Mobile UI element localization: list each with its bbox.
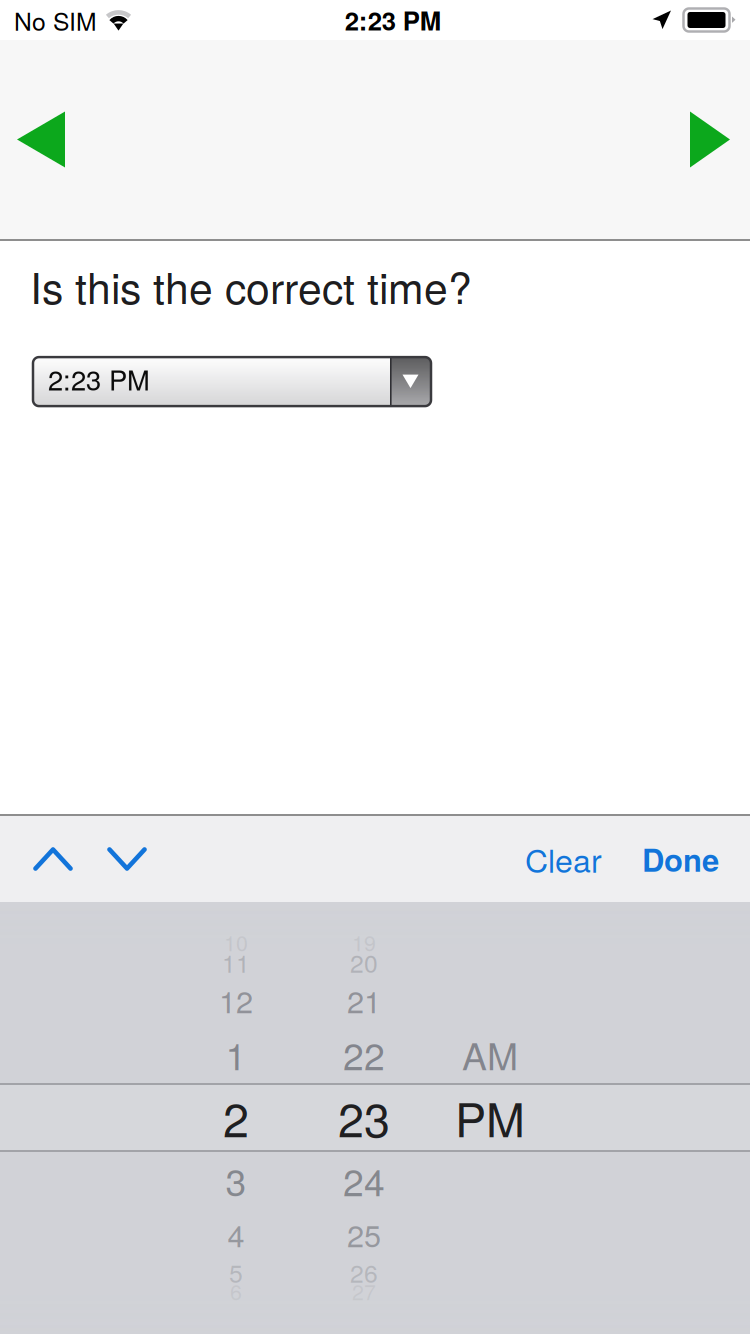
staticText: PM: [455, 1084, 525, 1150]
staticText: Clear: [525, 836, 602, 882]
button[interactable]: Previous field: [0, 816, 107, 902]
staticText: 2:23 PM: [48, 359, 150, 398]
staticText: 19: [352, 927, 376, 957]
staticText: 27: [352, 1276, 376, 1306]
button[interactable]: Clear: [505, 816, 622, 902]
staticText: 11: [222, 944, 250, 980]
staticText: Is this the correct time?: [30, 255, 472, 316]
button[interactable]: Done: [622, 816, 750, 902]
staticText: 5: [229, 1254, 243, 1290]
button[interactable]: Next field: [107, 816, 181, 902]
button[interactable]: Next: [670, 40, 750, 239]
staticText: 6: [230, 1276, 242, 1306]
staticText: 2: [223, 1084, 249, 1150]
staticText: 26: [350, 1254, 378, 1290]
staticText: 3: [225, 1153, 246, 1207]
staticText: 24: [343, 1153, 385, 1207]
staticText: 10: [224, 927, 248, 957]
staticText: 20: [350, 944, 378, 980]
button[interactable]: 2:23 PM: [33, 357, 431, 406]
staticText: 23: [338, 1084, 390, 1150]
staticText: 25: [347, 1212, 381, 1256]
staticText: 1: [225, 1027, 246, 1081]
staticText: 12: [219, 978, 253, 1022]
staticText: 21: [347, 978, 381, 1022]
staticText: 4: [227, 1212, 244, 1256]
staticText: Done: [642, 837, 719, 881]
staticText: No SIM: [14, 2, 97, 38]
staticText: 2:23 PM: [345, 2, 441, 38]
staticText: 22: [343, 1027, 385, 1081]
button[interactable]: Previous: [0, 40, 85, 239]
staticText: AM: [462, 1027, 518, 1081]
